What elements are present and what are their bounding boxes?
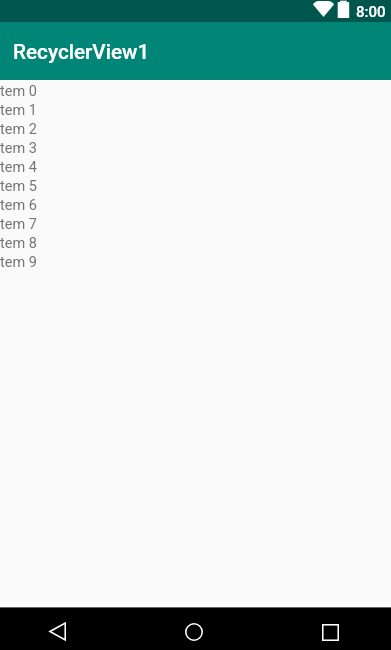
button[interactable]: Item 6 <box>0 196 391 215</box>
button[interactable]: Item 0 <box>0 82 391 101</box>
staticText: RecyclerView1 <box>13 40 150 64</box>
staticText: Item 8 <box>0 235 37 252</box>
staticText: Item 2 <box>0 121 37 138</box>
staticText: Item 0 <box>0 83 37 100</box>
button[interactable]: Item 4 <box>0 158 391 177</box>
staticText: Item 1 <box>0 102 37 119</box>
staticText: Item 9 <box>0 254 37 271</box>
button[interactable]: Item 1 <box>0 101 391 120</box>
staticText: Item 3 <box>0 140 37 157</box>
staticText: Item 5 <box>0 178 37 195</box>
staticText: Item 6 <box>0 197 37 214</box>
button[interactable]: Back <box>43 617 72 646</box>
button[interactable]: Item 3 <box>0 139 391 158</box>
button[interactable]: Item 5 <box>0 177 391 196</box>
button[interactable]: Item 2 <box>0 120 391 139</box>
staticText: Item 4 <box>0 159 37 176</box>
button[interactable]: Item 9 <box>0 253 391 272</box>
button[interactable]: Recent apps <box>316 618 345 647</box>
staticText: 8:00 <box>356 3 386 21</box>
staticText: Item 7 <box>0 216 37 233</box>
button[interactable]: Item 8 <box>0 234 391 253</box>
button[interactable]: Home <box>179 617 208 646</box>
button[interactable]: Item 7 <box>0 215 391 234</box>
